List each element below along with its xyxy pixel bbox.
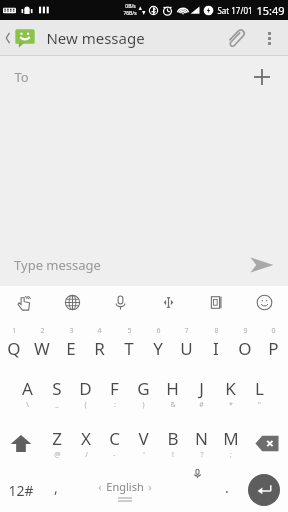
button[interactable]: 3 xyxy=(56,318,85,368)
staticText: A xyxy=(22,377,33,400)
button[interactable]: Attach xyxy=(218,21,252,55)
staticText: ? xyxy=(200,450,204,460)
button[interactable]: Voice input xyxy=(96,286,144,318)
staticText: E xyxy=(66,337,76,360)
staticText: 76B/s xyxy=(123,10,137,17)
button[interactable]: B xyxy=(158,418,187,468)
button[interactable]: 7 xyxy=(172,318,201,368)
button[interactable]: . xyxy=(213,468,240,512)
button[interactable]: 2 xyxy=(28,318,56,368)
staticText: \ xyxy=(26,400,29,410)
staticText: . xyxy=(225,478,229,497)
button[interactable]: Enter xyxy=(248,474,280,506)
button[interactable]: 12# xyxy=(0,468,42,512)
staticText: - xyxy=(113,450,116,460)
staticText: ; xyxy=(230,450,232,460)
button[interactable]: N xyxy=(187,418,216,468)
staticText: _ xyxy=(55,400,59,410)
staticText: Type message xyxy=(14,256,101,274)
staticText: G xyxy=(137,377,150,400)
staticText: O xyxy=(238,337,252,360)
staticText: 8 xyxy=(214,326,219,336)
staticText: L xyxy=(255,377,264,400)
staticText: ' xyxy=(143,450,145,460)
staticText: 15:49 xyxy=(256,3,285,18)
staticText: 1 xyxy=(12,326,17,336)
button[interactable]: Language xyxy=(48,286,96,318)
button[interactable]: Send xyxy=(244,247,280,283)
staticText: 7 xyxy=(184,326,189,336)
button[interactable]: More options xyxy=(256,25,282,51)
staticText: 0B/s xyxy=(125,3,136,10)
button[interactable]: Emoji xyxy=(240,286,288,318)
staticText: To xyxy=(14,68,29,86)
staticText: 12# xyxy=(8,481,34,500)
button[interactable]: J xyxy=(187,368,216,418)
button[interactable]: 5 xyxy=(114,318,143,368)
staticText: ) xyxy=(142,400,145,410)
staticText: " xyxy=(258,400,261,410)
button[interactable]: , xyxy=(42,468,69,512)
button[interactable]: A xyxy=(13,368,42,418)
button[interactable]: M xyxy=(216,418,245,468)
staticText: , xyxy=(54,478,58,497)
button[interactable]: 9 xyxy=(230,318,259,368)
staticText: * xyxy=(229,400,233,410)
staticText: Z xyxy=(52,427,62,450)
button[interactable]: Back xyxy=(2,23,39,53)
staticText: & xyxy=(170,400,176,410)
staticText: C xyxy=(109,427,120,450)
button[interactable]: 6 xyxy=(143,318,172,368)
button[interactable]: K xyxy=(216,368,245,418)
staticText: U xyxy=(180,337,193,360)
button[interactable]: Add recipient xyxy=(246,61,278,93)
button[interactable]: Space xyxy=(69,468,181,512)
staticText: › xyxy=(148,479,152,494)
staticText: ‹ xyxy=(98,479,102,494)
button[interactable]: D xyxy=(71,368,100,418)
staticText: ! xyxy=(172,450,174,460)
staticText: 5 xyxy=(127,326,132,336)
button[interactable]: V xyxy=(129,418,158,468)
button[interactable]: To xyxy=(14,56,236,98)
button[interactable]: Backspace xyxy=(245,418,288,468)
staticText: English xyxy=(106,479,144,494)
button[interactable]: Type message xyxy=(14,244,236,286)
button[interactable]: F xyxy=(100,368,129,418)
staticText: D xyxy=(79,377,92,400)
button[interactable]: H xyxy=(158,368,187,418)
staticText: W xyxy=(34,337,50,360)
other: Back xyxy=(5,32,11,44)
staticText: / xyxy=(85,450,88,460)
staticText: S xyxy=(52,377,62,400)
staticText: X xyxy=(81,427,91,450)
button[interactable]: Clipboard xyxy=(192,286,240,318)
button[interactable]: S xyxy=(42,368,71,418)
staticText: K xyxy=(225,377,236,400)
button[interactable]: 1 xyxy=(0,318,28,368)
button[interactable]: L xyxy=(245,368,274,418)
button[interactable]: 0 xyxy=(259,318,288,368)
staticText: V xyxy=(138,427,149,450)
button[interactable]: Cursor control xyxy=(144,286,192,318)
button[interactable]: X xyxy=(71,418,100,468)
button[interactable]: Voice input xyxy=(181,468,213,512)
button[interactable]: Shift xyxy=(0,418,42,468)
staticText: 0 xyxy=(271,326,276,336)
button[interactable]: Handwriting xyxy=(0,286,48,318)
staticText: 6 xyxy=(156,326,161,336)
staticText: M xyxy=(223,427,239,450)
staticText: R xyxy=(94,337,105,360)
staticText: N xyxy=(195,427,208,450)
staticText: : xyxy=(114,400,116,410)
staticText: New message xyxy=(46,28,145,48)
staticText: 3 xyxy=(69,326,74,336)
button[interactable]: 4 xyxy=(85,318,114,368)
staticText: I xyxy=(213,337,219,360)
button[interactable]: Z xyxy=(42,418,71,468)
staticText: F xyxy=(110,377,119,400)
button[interactable]: C xyxy=(100,418,129,468)
button[interactable]: 8 xyxy=(201,318,230,368)
button[interactable]: G xyxy=(129,368,158,418)
staticText: P xyxy=(268,337,279,360)
